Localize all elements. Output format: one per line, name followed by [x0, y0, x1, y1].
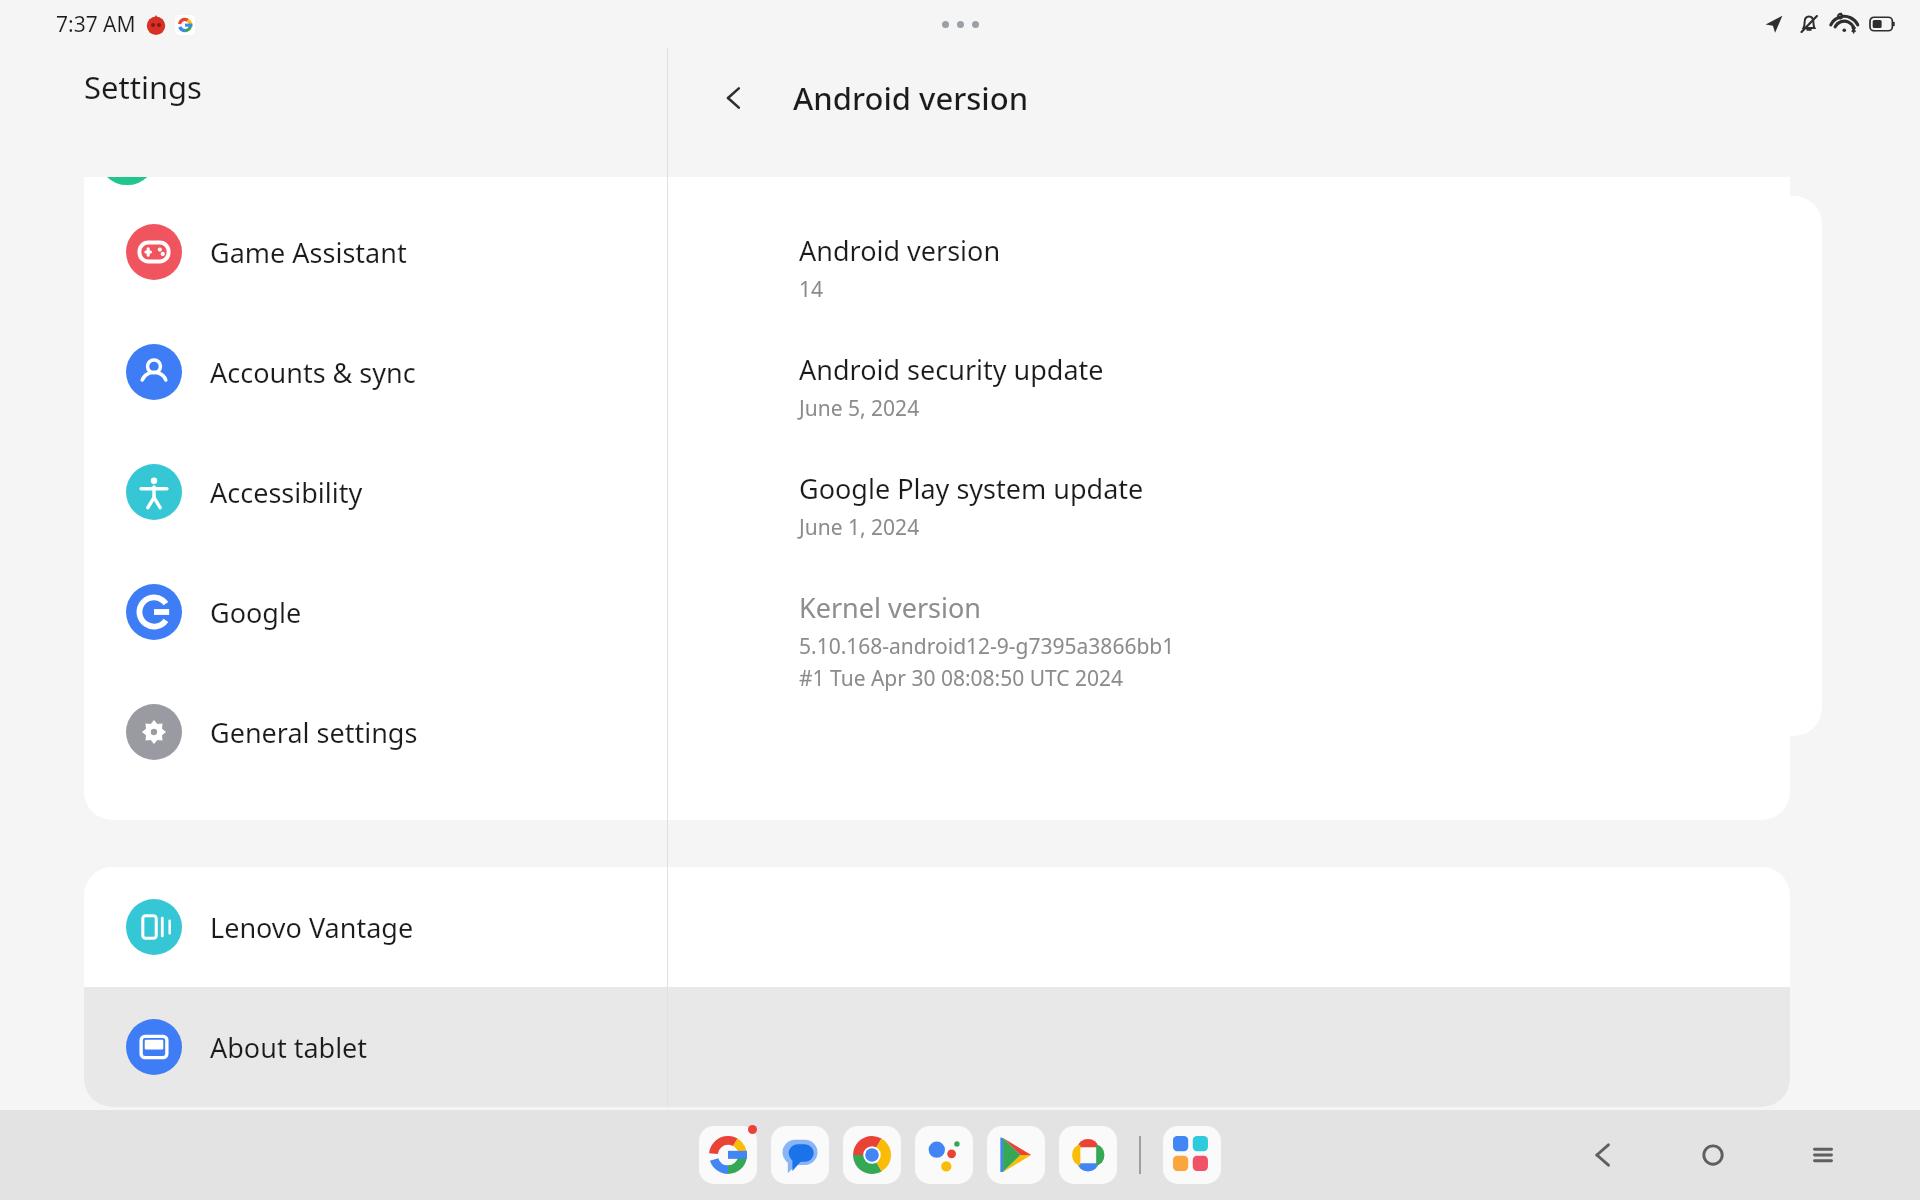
staticText: 5.10.168-android12-9-g7395a3866bb1 [799, 632, 1175, 661]
staticText: June 1, 2024 [799, 513, 920, 542]
button[interactable]: Home [1686, 1128, 1740, 1182]
staticText: Kernel version [799, 589, 982, 626]
button[interactable]: Play Store [985, 1124, 1047, 1186]
button[interactable]: Lenovo Vantage [84, 867, 1790, 987]
button[interactable]: Kernel version [799, 589, 1780, 696]
button[interactable]: Chrome [841, 1124, 903, 1186]
staticText: Android version [799, 232, 1001, 269]
button[interactable]: Recent apps [1796, 1128, 1850, 1182]
staticText: #1 Tue Apr 30 08:08:50 UTC 2024 [799, 664, 1124, 693]
button[interactable]: About tablet [84, 987, 1790, 1107]
staticText: Google [210, 594, 302, 631]
button[interactable]: Photos [1057, 1124, 1119, 1186]
button[interactable]: Back [1576, 1128, 1630, 1182]
staticText: June 5, 2024 [799, 394, 920, 423]
staticText: Lenovo Vantage [210, 909, 414, 946]
staticText: Android security update [799, 351, 1104, 388]
staticText: General settings [210, 714, 418, 751]
staticText: About tablet [210, 1029, 368, 1066]
button[interactable]: Game Assistant [84, 192, 1790, 312]
button[interactable]: General settings [84, 672, 1790, 792]
button[interactable]: Android version [799, 232, 1780, 307]
button[interactable]: Messages [769, 1124, 831, 1186]
staticText: Google Play system update [799, 470, 1144, 507]
staticText: 7:37 AM [56, 10, 136, 39]
staticText: Settings [84, 66, 202, 108]
button[interactable]: All apps [1161, 1124, 1223, 1186]
staticText: Android version [793, 77, 1029, 119]
staticText: Accounts & sync [210, 354, 416, 391]
staticText: 14 [799, 275, 824, 304]
staticText: Accessibility [210, 474, 363, 511]
button[interactable]: Back [705, 69, 763, 127]
button[interactable]: Accessibility [84, 432, 1790, 552]
button[interactable]: Accounts & sync [84, 312, 1790, 432]
button[interactable]: Google Play system update [799, 470, 1780, 545]
button[interactable]: Android security update [799, 351, 1780, 426]
button[interactable]: Assistant [913, 1124, 975, 1186]
button[interactable]: Google Search [697, 1124, 759, 1186]
staticText: Game Assistant [210, 234, 407, 271]
button[interactable]: Google [84, 552, 1790, 672]
